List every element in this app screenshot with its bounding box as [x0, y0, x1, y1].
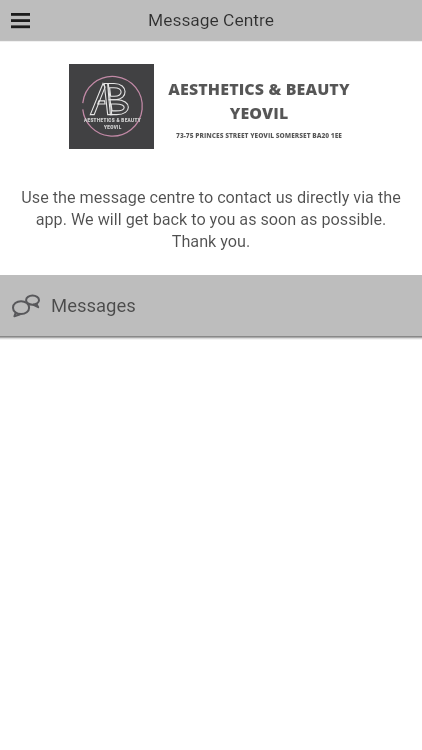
staticText: Use the message centre to contact us dir… [13, 188, 409, 251]
staticText: AESTHETICS & BEAUTY [84, 118, 141, 123]
staticText: YEOVIL [104, 125, 122, 130]
staticText: 73-75 PRINCES STREET YEOVIL SOMERSET BA2… [176, 131, 342, 140]
staticText: AESTHETICS & BEAUTY YEOVIL [168, 78, 350, 124]
button[interactable]: Messages [0, 275, 422, 336]
staticText: Message Centre [148, 10, 274, 30]
button[interactable]: Open navigation menu [0, 0, 40, 40]
staticText: Messages [51, 295, 136, 317]
